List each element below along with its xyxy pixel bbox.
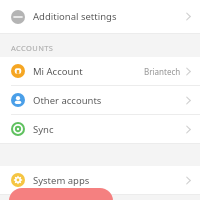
button[interactable]: System apps	[0, 166, 200, 194]
staticText: Other accounts	[33, 94, 102, 107]
button[interactable]: Other accounts	[0, 86, 200, 114]
other: Open System apps	[186, 176, 191, 185]
other: Open Sync	[186, 125, 191, 134]
staticText: ACCOUNTS	[11, 43, 54, 53]
button[interactable]: Sync	[0, 115, 200, 143]
other: Open Additional settings	[186, 12, 191, 21]
staticText: Mi Account	[33, 65, 83, 78]
staticText: Briantech	[144, 66, 181, 77]
button[interactable]: Additional settings	[0, 0, 200, 33]
button[interactable]: Mi Account	[0, 57, 200, 85]
staticText: Sync	[33, 123, 54, 136]
staticText: System apps	[33, 174, 90, 187]
other: Open Other accounts	[186, 96, 191, 105]
staticText: Additional settings	[33, 10, 117, 23]
other: Open Mi Account	[186, 67, 191, 76]
